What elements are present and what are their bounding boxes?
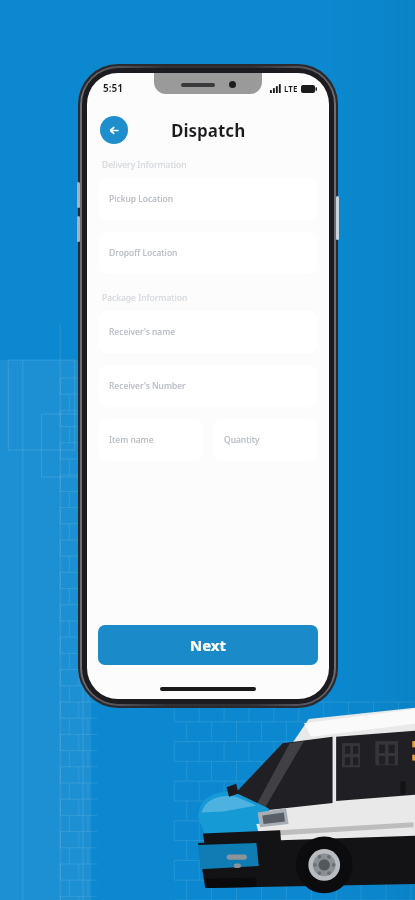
staticText: Package Information [102,292,188,304]
staticText: Quantity [224,434,260,446]
staticText: Item name [109,434,154,446]
button[interactable]: Item name [98,419,203,461]
button[interactable]: Receiver's Number [98,365,318,407]
staticText: Next [190,635,227,655]
staticText: Dropoff Location [109,247,178,259]
button[interactable]: Pickup Location [98,178,318,220]
staticText: Delivery Information [102,159,187,171]
button[interactable]: Quantity [213,419,318,461]
staticText: LTE [284,83,298,94]
staticText: Receiver's name [109,326,176,338]
button[interactable]: Back [100,116,128,144]
staticText: Dispatch [171,119,246,142]
staticText: Pickup Location [109,193,174,205]
staticText: 5:51 [103,81,123,95]
staticText: Receiver's Number [109,380,186,392]
button[interactable]: Dropoff Location [98,232,318,274]
button[interactable]: Receiver's name [98,311,318,353]
button[interactable]: Next [98,625,318,665]
